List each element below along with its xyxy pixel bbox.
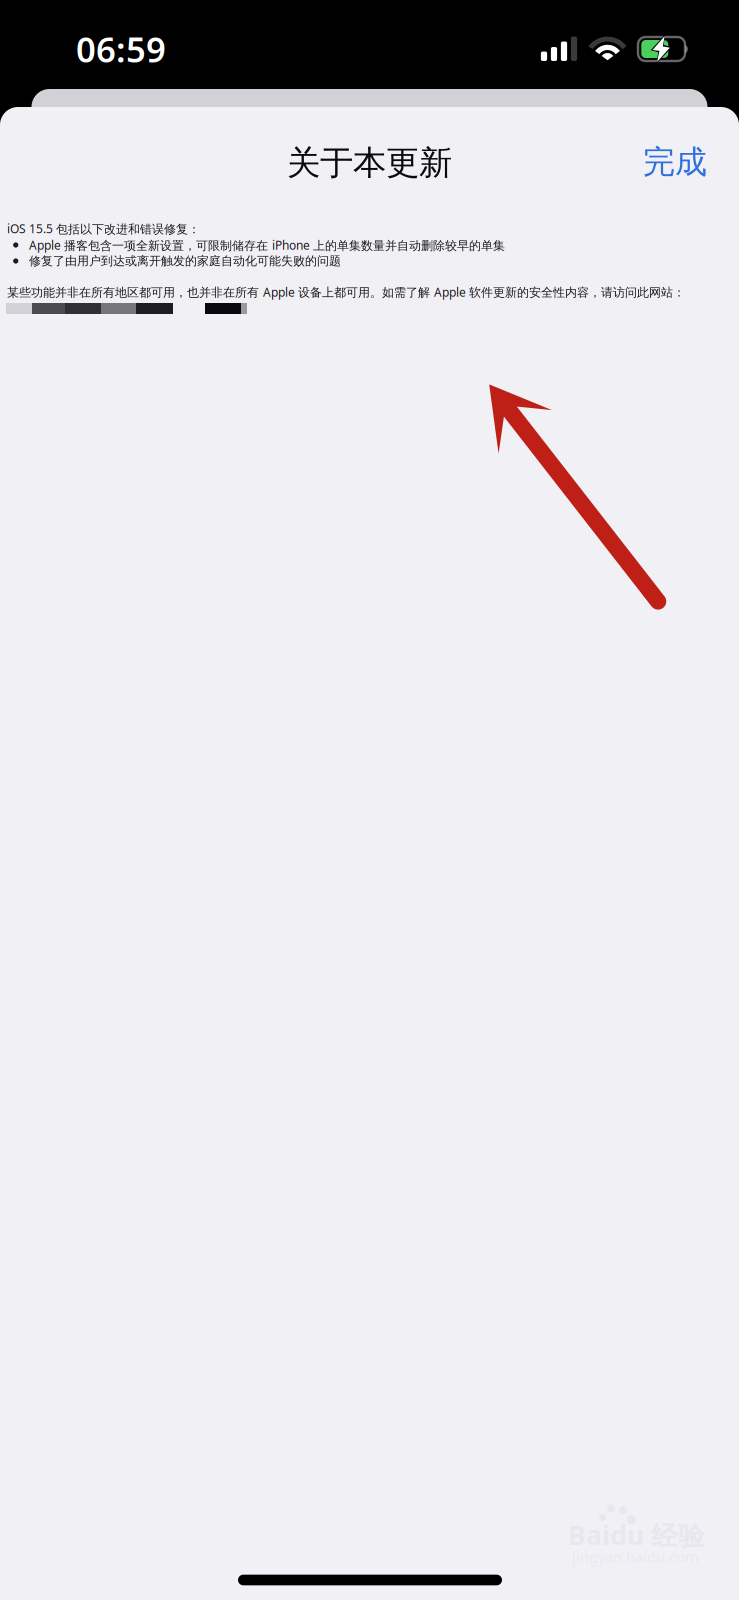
staticText: Baidu 经验 bbox=[568, 1517, 705, 1553]
staticText: Apple 播客包含一项全新设置，可限制储存在 iPhone 上的单集数量并自动… bbox=[29, 237, 505, 253]
staticText: 某些功能并非在所有地区都可用，也并非在所有 Apple 设备上都可用。如需了解 … bbox=[7, 284, 685, 300]
staticText: 修复了由用户到达或离开触发的家庭自动化可能失败的问题 bbox=[29, 254, 341, 268]
staticText: 关于本更新 bbox=[287, 142, 452, 183]
button[interactable]: 完成 bbox=[623, 132, 727, 192]
staticText: 06:59 bbox=[76, 26, 166, 72]
staticText: 完成 bbox=[643, 142, 707, 182]
staticText: iOS 15.5 包括以下改进和错误修复： bbox=[7, 220, 200, 236]
